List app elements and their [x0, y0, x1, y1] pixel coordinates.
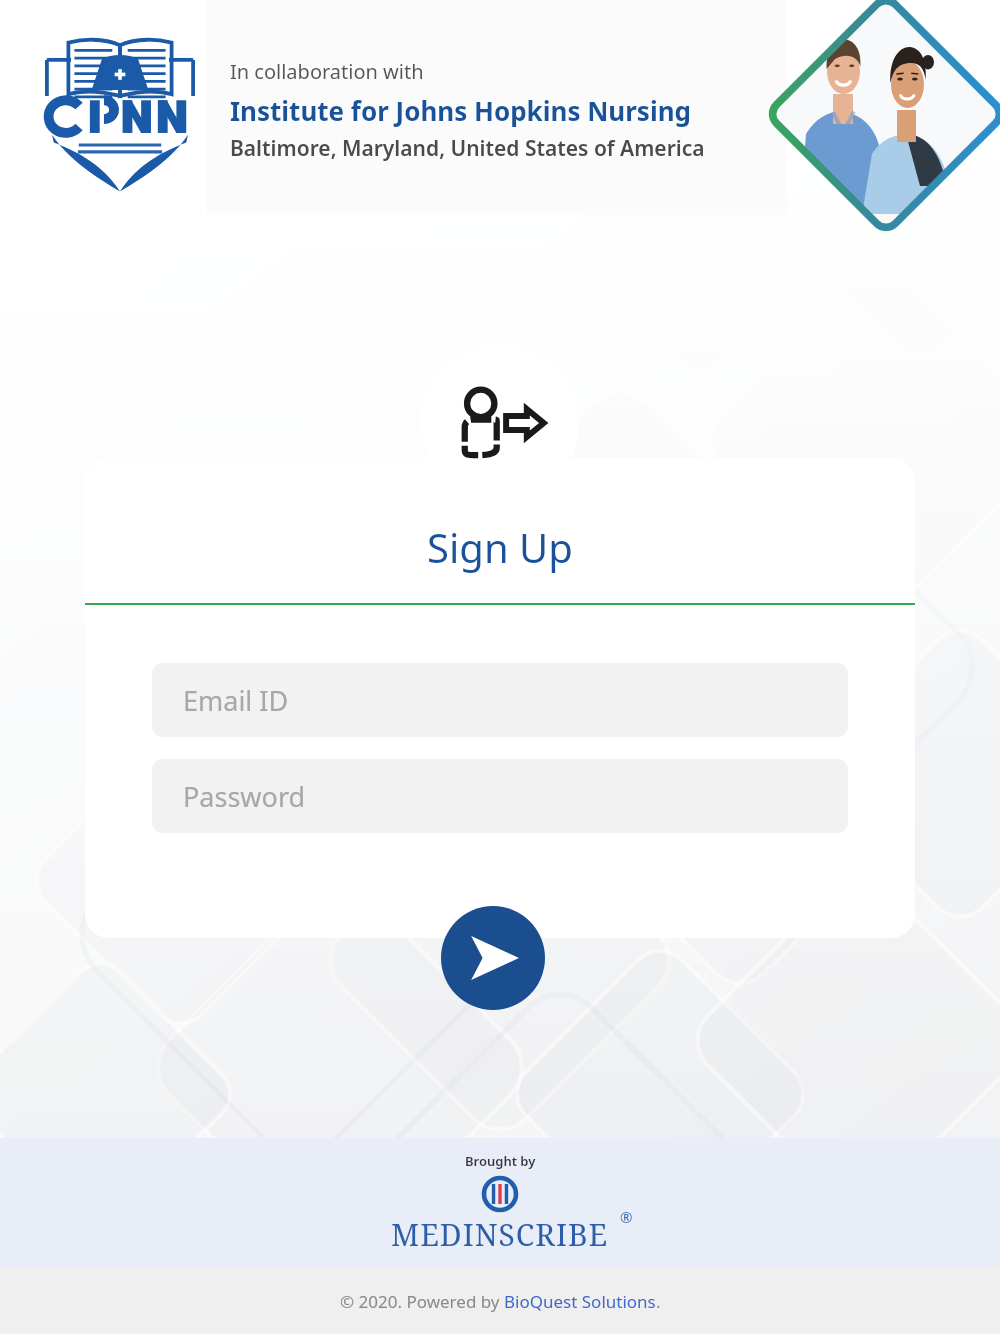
staticText: ®	[620, 1207, 633, 1227]
staticText: .	[656, 1290, 661, 1313]
button[interactable]: BioQuest Solutions	[504, 1290, 656, 1313]
staticText: Baltimore, Maryland, United States of Am…	[230, 134, 705, 163]
staticText: Password	[183, 778, 306, 815]
button[interactable]: Email ID	[152, 663, 848, 737]
button[interactable]: Submit sign up	[441, 906, 545, 1010]
staticText: © 2020. Powered by	[340, 1290, 504, 1313]
button[interactable]: Password	[152, 759, 848, 833]
staticText: MEDINSCRIBE	[391, 1214, 609, 1255]
staticText: Institute for Johns Hopkins Nursing	[230, 93, 692, 128]
staticText: In collaboration with	[230, 58, 424, 85]
staticText: Sign Up	[85, 520, 915, 574]
staticText: Brought by	[465, 1152, 536, 1170]
staticText: Email ID	[183, 682, 289, 719]
